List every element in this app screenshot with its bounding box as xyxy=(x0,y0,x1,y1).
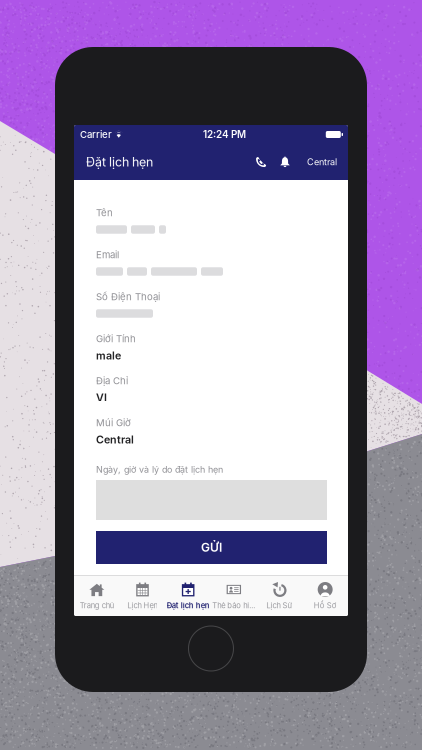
button[interactable]: Thẻ bảo hi... xyxy=(211,575,257,616)
button[interactable]: Lịch Sử xyxy=(257,575,302,616)
staticText: Trang chủ xyxy=(80,601,114,610)
staticText: Ngày, giờ và lý do đặt lịch hẹn xyxy=(96,464,223,475)
button[interactable]: GỬI xyxy=(96,531,327,564)
staticText: male xyxy=(96,349,121,362)
staticText: Múi Giờ xyxy=(96,417,131,429)
button[interactable]: Đặt lịch hẹn xyxy=(165,575,211,616)
button[interactable]: Central xyxy=(297,147,337,177)
staticText: 12:24 PM xyxy=(203,128,246,140)
staticText: Số Điện Thoại xyxy=(96,291,160,303)
staticText: Tên xyxy=(96,207,113,219)
staticText: Central xyxy=(96,433,134,446)
staticText: Lịch Hẹn xyxy=(127,601,157,610)
button[interactable]: Lịch Hẹn xyxy=(120,575,165,616)
button[interactable]: Hồ Sơ xyxy=(302,575,348,616)
staticText: Đặt lịch hẹn xyxy=(167,601,210,610)
button[interactable]: Trang chủ xyxy=(74,575,120,616)
staticText: VI xyxy=(96,391,107,404)
staticText: Đặt lịch hẹn xyxy=(86,154,153,169)
staticText: Địa Chỉ xyxy=(96,375,128,387)
staticText: Thẻ bảo hi... xyxy=(212,601,255,610)
staticText: Hồ Sơ xyxy=(314,601,337,610)
staticText: Giới Tính xyxy=(96,333,136,345)
staticText: Lịch Sử xyxy=(266,601,292,610)
staticText: Carrier xyxy=(80,129,112,140)
button[interactable]: Call xyxy=(249,147,273,177)
staticText: Central xyxy=(307,156,337,167)
button[interactable]: Notifications xyxy=(273,147,297,177)
staticText: GỬI xyxy=(201,540,222,555)
staticText: Email xyxy=(96,249,119,261)
